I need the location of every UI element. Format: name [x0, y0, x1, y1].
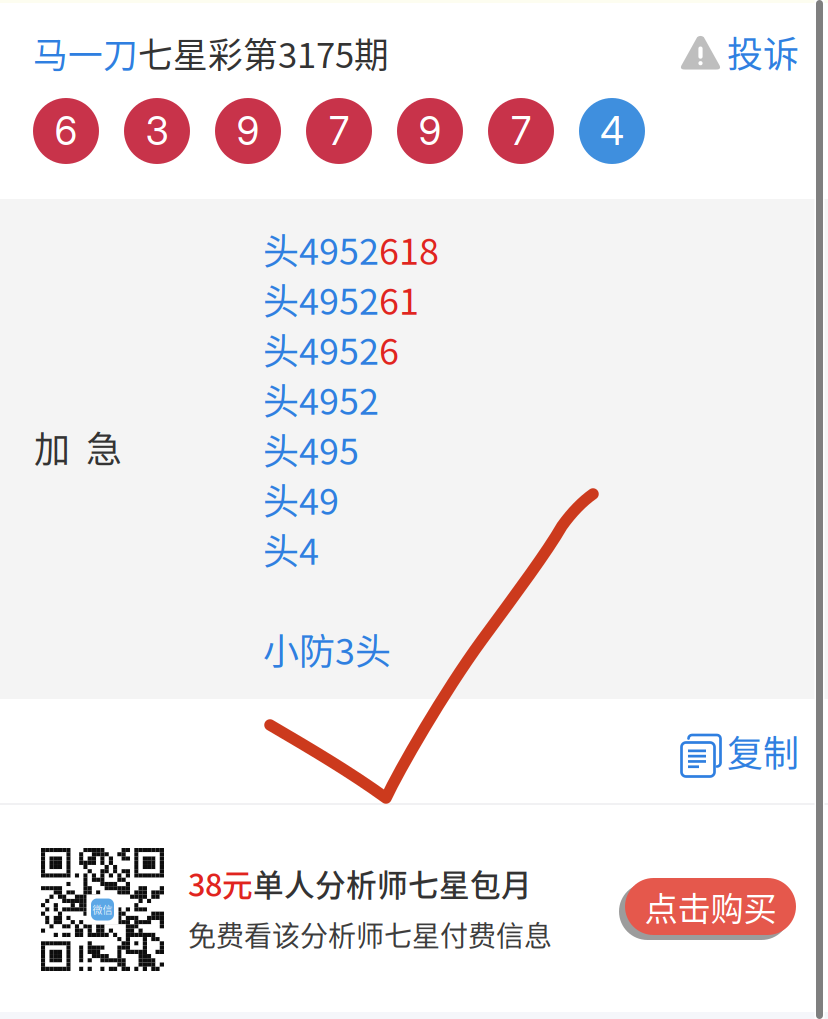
staticText: 头495 [263, 423, 359, 475]
staticText: 7 [511, 108, 531, 154]
button[interactable]: 复制 [681, 723, 799, 779]
staticText: 小防3头 [263, 623, 391, 675]
staticText: 61 [379, 273, 419, 325]
button[interactable]: 点击购买 [619, 878, 796, 940]
staticText: 头4952 [263, 223, 379, 275]
staticText: 3 [145, 108, 168, 154]
staticText: 9 [418, 108, 441, 154]
staticText: 6 [379, 323, 399, 375]
staticText: 投诉 [727, 26, 799, 78]
staticText: 单人分析师七星包月 [253, 861, 532, 905]
staticText: 免费看该分析师七星付费信息 [188, 914, 552, 954]
staticText: 马一刀 [33, 28, 138, 78]
staticText: 618 [379, 223, 439, 275]
staticText: 点击购买 [644, 882, 776, 931]
button[interactable]: 投诉 [680, 26, 799, 78]
staticText: 4 [600, 108, 624, 154]
staticText: 7 [329, 108, 349, 154]
staticText: 头4952 [263, 323, 379, 375]
staticText: 头4 [263, 523, 319, 575]
staticText: 头49 [263, 473, 339, 525]
staticText: 9 [236, 108, 259, 154]
staticText: 头4952 [263, 373, 379, 425]
staticText: 6 [54, 108, 77, 154]
button[interactable]: 马一刀 [33, 27, 389, 79]
staticText: 七星彩第3175期 [138, 28, 389, 78]
staticText: 复制 [727, 725, 799, 777]
staticText: 头4952 [263, 273, 379, 325]
staticText: 38元 [188, 861, 253, 905]
staticText: 加 急 [34, 421, 122, 473]
staticText: 微信 [92, 902, 112, 917]
